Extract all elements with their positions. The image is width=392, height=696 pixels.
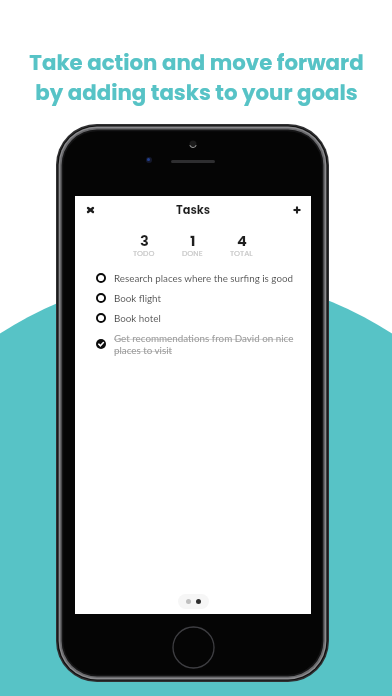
- button[interactable]: Book hotel: [75, 308, 311, 328]
- staticText: 3: [140, 231, 149, 251]
- staticText: Tasks: [176, 202, 211, 218]
- staticText: TOTAL: [230, 248, 253, 259]
- staticText: TODO: [133, 248, 155, 259]
- button[interactable]: Book flight: [75, 288, 311, 308]
- staticText: Take action and move forward: [29, 48, 364, 78]
- staticText: Book flight: [114, 292, 161, 304]
- staticText: DONE: [182, 248, 203, 259]
- button[interactable]: Research places where the surfing is goo…: [75, 268, 311, 288]
- staticText: Book hotel: [114, 312, 161, 324]
- staticText: 1: [190, 231, 196, 251]
- staticText: Research places where the surfing is goo…: [114, 272, 293, 284]
- staticText: by adding tasks to your goals: [35, 78, 358, 108]
- button[interactable]: [178, 594, 209, 609]
- button[interactable]: Add task: [288, 201, 306, 219]
- button[interactable]: Get recommendations from David on nice p…: [75, 328, 311, 360]
- staticText: Get recommendations from David on nice p…: [114, 332, 296, 356]
- button[interactable]: Close: [81, 201, 99, 219]
- staticText: 4: [237, 231, 247, 251]
